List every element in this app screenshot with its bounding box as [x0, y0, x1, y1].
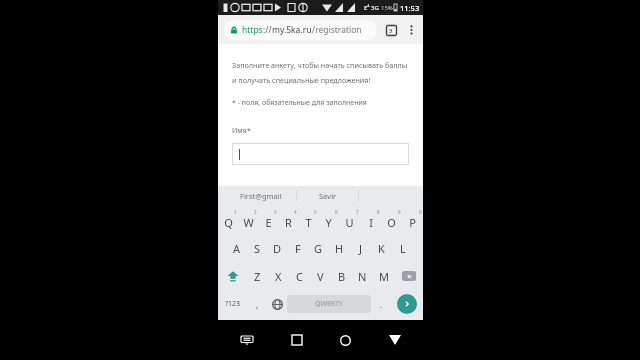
button[interactable]: A — [227, 234, 247, 262]
button[interactable]: 2 — [238, 205, 258, 234]
button[interactable]: N — [352, 262, 373, 290]
staticText: 15% — [381, 4, 393, 12]
staticText: э — [389, 26, 393, 35]
button[interactable]: Back — [370, 328, 419, 352]
staticText: L — [400, 241, 406, 256]
button[interactable]: ?123 — [218, 290, 247, 318]
staticText: Имя — [232, 126, 247, 136]
staticText: QWERTY — [315, 299, 344, 309]
staticText: P — [409, 215, 416, 230]
staticText: * — [247, 126, 251, 136]
staticText: ?123 — [225, 299, 241, 309]
button[interactable]: 3 — [258, 205, 278, 234]
button[interactable]: Hide keyboard — [222, 328, 272, 352]
button[interactable]: X — [268, 262, 289, 290]
button[interactable]: V — [310, 262, 331, 290]
staticText: N — [358, 269, 367, 284]
staticText: Y — [325, 215, 332, 230]
staticText: U — [345, 215, 354, 230]
staticText: 6 — [335, 209, 338, 215]
button[interactable]: Backspace — [394, 262, 423, 290]
button[interactable]: Home — [321, 328, 370, 352]
staticText: 4 — [294, 209, 297, 215]
button[interactable]: 6 — [318, 205, 339, 234]
staticText: C — [296, 269, 303, 284]
button[interactable]: Z — [247, 262, 268, 290]
staticText: M — [379, 269, 389, 284]
button[interactable]: QWERTY — [287, 295, 371, 313]
button[interactable]: https — [224, 20, 377, 40]
staticText: Z — [254, 269, 261, 284]
staticText: J — [359, 241, 363, 256]
button[interactable]: F — [287, 234, 308, 262]
button[interactable]: Change language — [267, 290, 287, 318]
staticText: X — [275, 269, 282, 284]
staticText: A — [233, 241, 241, 256]
staticText: * - поля, обязательные для заполнения — [232, 98, 367, 108]
button[interactable]: Savir — [297, 186, 358, 205]
button[interactable]: L — [392, 234, 413, 262]
staticText: , — [256, 299, 259, 310]
staticText: S — [254, 241, 261, 256]
staticText: V — [317, 269, 324, 284]
button[interactable]: Recents — [272, 328, 321, 352]
staticText: . — [380, 299, 383, 310]
button[interactable]: 8 — [360, 205, 381, 234]
button[interactable]: J — [350, 234, 371, 262]
staticText: E — [265, 215, 272, 230]
staticText: H — [335, 241, 344, 256]
button[interactable]: M — [373, 262, 394, 290]
staticText: 8 — [377, 209, 380, 215]
staticText: O — [387, 215, 396, 230]
button[interactable]: 5 — [298, 205, 318, 234]
staticText: E⁴ 3G — [364, 4, 379, 12]
staticText: K — [378, 241, 385, 256]
button[interactable]: 1 — [218, 205, 238, 234]
staticText: 9 — [398, 209, 401, 215]
button[interactable]: 0 — [402, 205, 423, 234]
staticText: T — [305, 215, 312, 230]
button[interactable]: , — [247, 290, 267, 318]
staticText: W — [243, 215, 254, 230]
staticText: 5 — [314, 209, 317, 215]
button[interactable]: B — [331, 262, 352, 290]
staticText: R — [285, 215, 292, 230]
button[interactable]: Enter — [391, 290, 423, 318]
button[interactable] — [232, 143, 409, 165]
staticText: :// — [263, 24, 272, 36]
staticText: Заполните анкету, чтобы начать списывать… — [232, 60, 408, 70]
button[interactable]: Shift — [218, 262, 247, 290]
button[interactable]: S — [247, 234, 267, 262]
button[interactable]: H — [329, 234, 350, 262]
staticText: /registration — [312, 24, 362, 36]
button[interactable]: 7 — [339, 205, 360, 234]
button[interactable]: G — [308, 234, 329, 262]
button[interactable]: 4 — [278, 205, 298, 234]
staticText: B — [338, 269, 346, 284]
staticText: First@gmail — [240, 191, 282, 201]
button[interactable]: More options — [403, 22, 419, 38]
staticText: 7 — [356, 209, 359, 215]
button[interactable]: C — [289, 262, 310, 290]
staticText: Savir — [319, 191, 337, 201]
staticText: 0 — [419, 209, 422, 215]
button[interactable]: . — [371, 290, 391, 318]
button[interactable]: K — [371, 234, 392, 262]
staticText: G — [314, 241, 323, 256]
staticText: 2 — [254, 209, 257, 215]
staticText: F — [295, 241, 301, 256]
button[interactable]: D — [267, 234, 287, 262]
staticText: Q — [224, 215, 233, 230]
staticText: 1 — [234, 209, 237, 215]
staticText: и получать специальные предложения! — [232, 75, 371, 85]
staticText: I — [369, 215, 373, 230]
button[interactable]: 9 — [381, 205, 402, 234]
button[interactable]: First@gmail — [226, 186, 296, 205]
staticText: my.5ka.ru — [272, 24, 312, 36]
staticText: https — [242, 24, 263, 36]
button[interactable]: Tabs — [383, 22, 399, 38]
staticText: 11:53 — [400, 3, 420, 13]
staticText: D — [273, 241, 282, 256]
staticText: 3 — [274, 209, 277, 215]
